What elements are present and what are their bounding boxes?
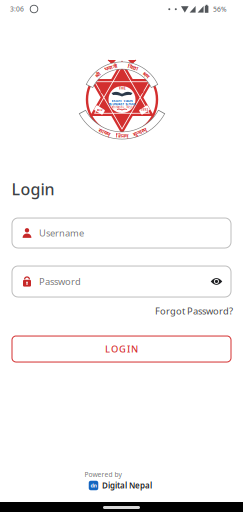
staticText: भवानी bbox=[104, 64, 118, 71]
staticText: शिवम् bbox=[116, 132, 128, 139]
staticText: Username bbox=[39, 227, 84, 239]
staticText: सुन्दरम् bbox=[133, 128, 147, 135]
staticText: BRIGHT VISION bbox=[111, 99, 132, 103]
staticText: श्री bbox=[95, 71, 101, 78]
button[interactable]: Username bbox=[12, 218, 231, 248]
staticText: L O G I N bbox=[105, 343, 138, 355]
staticText: dn bbox=[90, 482, 96, 489]
staticText: सत्यम् bbox=[98, 128, 110, 135]
staticText: Powered by bbox=[84, 470, 121, 479]
button[interactable]: Password bbox=[12, 266, 231, 297]
staticText: SECONDARY SCHOOL bbox=[108, 102, 135, 106]
staticText: 3:06 bbox=[10, 5, 24, 13]
staticText: Login bbox=[11, 178, 54, 200]
staticText: Kathmandu, Nepal bbox=[109, 105, 134, 109]
button[interactable]: L O G I N bbox=[12, 336, 231, 362]
button[interactable]: Show password bbox=[206, 273, 227, 290]
staticText: श्रम bbox=[143, 71, 150, 78]
staticText: 1993 bbox=[140, 108, 148, 112]
staticText: Forgot Password? bbox=[155, 305, 233, 317]
staticText: Digital Nepal bbox=[102, 480, 152, 491]
staticText: Password bbox=[39, 275, 81, 288]
staticText: 56% bbox=[213, 5, 227, 14]
staticText: THE bbox=[118, 85, 125, 91]
button[interactable]: Forgot Password? bbox=[155, 305, 233, 317]
staticText: ESTD bbox=[96, 108, 102, 112]
staticText: विद्या bbox=[128, 64, 139, 71]
